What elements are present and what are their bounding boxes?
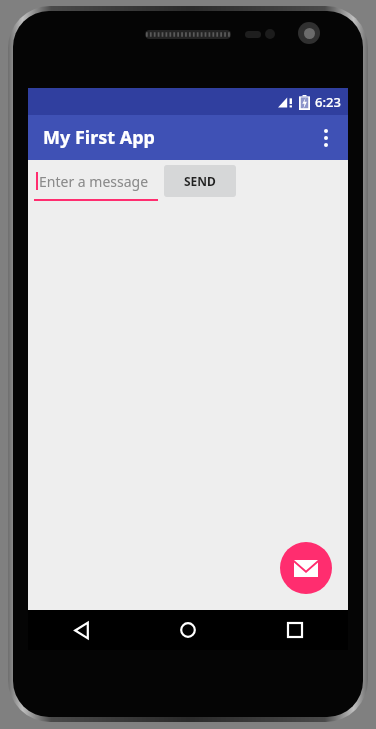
staticText: SEND bbox=[184, 173, 216, 189]
button[interactable]: Enter a message bbox=[34, 165, 158, 201]
button[interactable]: Send message bbox=[280, 542, 332, 594]
staticText: My First App bbox=[43, 125, 155, 150]
button[interactable]: More options bbox=[303, 115, 348, 160]
button[interactable]: Home bbox=[134, 610, 241, 650]
staticText: Enter a message bbox=[39, 172, 149, 191]
button[interactable]: SEND bbox=[164, 165, 236, 197]
button[interactable]: Back bbox=[28, 610, 134, 650]
button[interactable]: Recent apps bbox=[241, 610, 348, 650]
staticText: 6:23 bbox=[315, 93, 341, 111]
